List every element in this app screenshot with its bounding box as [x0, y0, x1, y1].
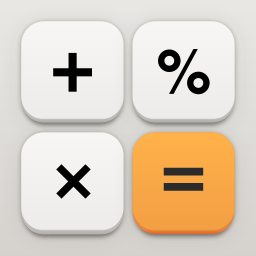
button[interactable]: Multiply: [21, 132, 124, 234]
button[interactable]: Add: [21, 21, 124, 123]
button[interactable]: Percent: [132, 21, 235, 123]
button[interactable]: Equals: [132, 132, 235, 234]
